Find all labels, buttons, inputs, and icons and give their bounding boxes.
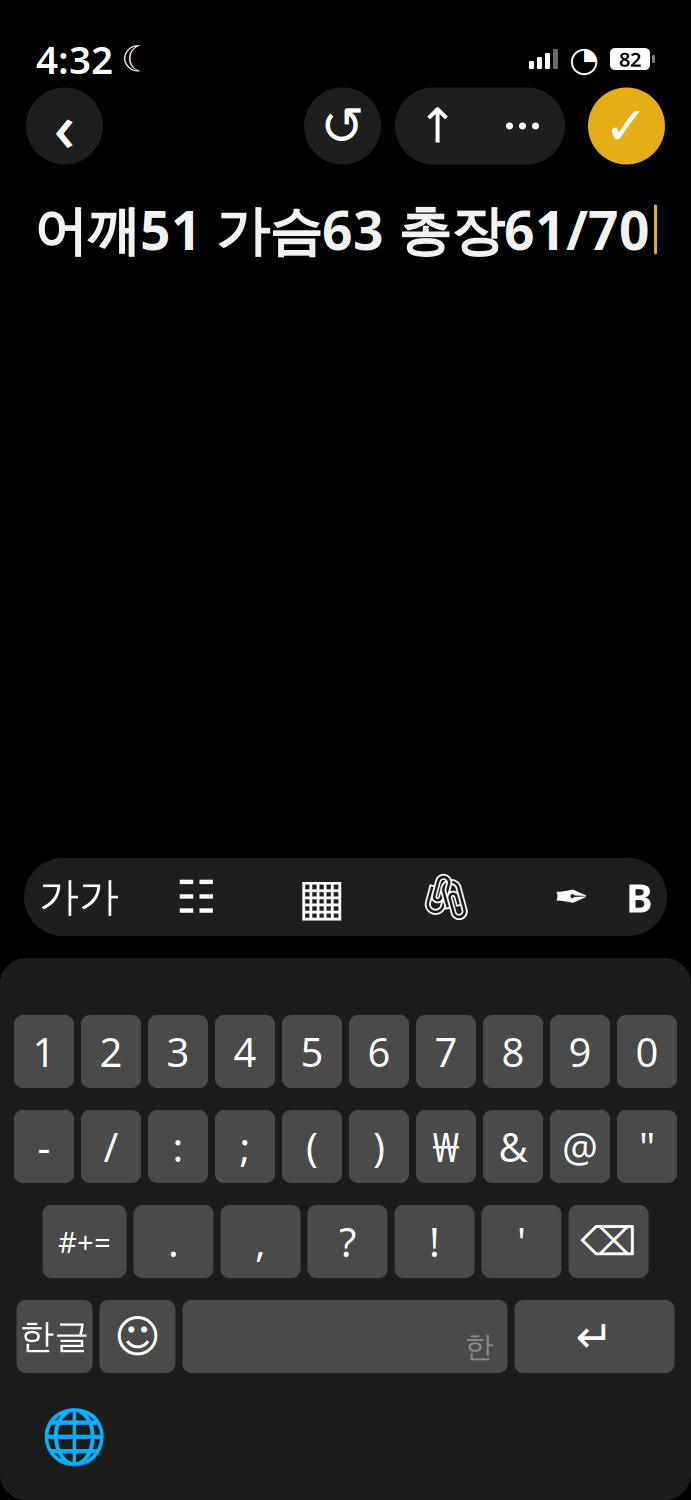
staticText: & [498,1120,527,1173]
button[interactable]: ₩ [416,1110,476,1183]
staticText: ↵ [575,1311,613,1362]
button[interactable]: 9 [550,1015,610,1088]
staticText: , [255,1215,266,1268]
button[interactable]: / [81,1110,141,1183]
staticText: ☷ [176,871,217,923]
button[interactable]: Text format [24,858,134,936]
staticText: 4 [233,1025,256,1078]
button[interactable]: More [480,87,565,164]
staticText: 9 [568,1025,591,1078]
staticText: 3 [166,1025,189,1078]
button[interactable]: 1 [14,1015,74,1088]
button[interactable]: Done [588,87,665,164]
button[interactable]: ) [349,1110,409,1183]
button[interactable]: ' [481,1205,561,1278]
staticText: 4:32 [36,33,113,85]
staticText: ☺ [114,1311,161,1362]
staticText: ( [306,1120,318,1173]
button[interactable]: Back [26,87,103,164]
staticText: ✒ [553,873,589,921]
staticText: . [168,1215,179,1268]
staticText: ◔ [569,39,599,79]
button[interactable]: & [483,1110,543,1183]
button[interactable]: 3 [148,1015,208,1088]
staticText: - [37,1120,50,1173]
staticText: 0 [635,1025,658,1078]
button[interactable]: Bold [634,858,667,936]
button[interactable]: 7 [416,1015,476,1088]
button[interactable]: , [220,1205,300,1278]
staticText: 한글 [19,1315,89,1358]
staticText: 7 [434,1025,457,1078]
button[interactable]: 4 [215,1015,275,1088]
staticText: 가가 [39,872,119,921]
button[interactable]: Checklist [134,858,259,936]
button[interactable]: 5 [282,1015,342,1088]
staticText: ↺ [320,96,365,156]
button[interactable]: Next keyboard [28,1395,120,1479]
staticText: B [626,870,653,923]
staticText: ↑ [417,99,457,153]
staticText: 🌐 [41,1406,107,1467]
staticText: ' [517,1215,526,1268]
button[interactable]: #+= [42,1205,126,1278]
staticText: 8 [501,1025,524,1078]
staticText: " [639,1120,655,1173]
button[interactable]: @ [550,1110,610,1183]
staticText: #+= [58,1222,111,1261]
staticText: ☾ [121,39,153,79]
button[interactable]: 한글 [16,1300,92,1373]
staticText: ▦ [297,868,345,926]
staticText: @ [562,1120,598,1173]
staticText: 어깨51 가슴63 총장61/70 [34,194,650,265]
staticText: ; [239,1120,250,1173]
button[interactable]: 6 [349,1015,409,1088]
button[interactable]: ↵ [514,1300,674,1373]
staticText: 한 [464,1329,493,1365]
button[interactable]: ( [282,1110,342,1183]
button[interactable]: Attach [384,858,509,936]
button[interactable]: - [14,1110,74,1183]
button[interactable]: " [617,1110,677,1183]
staticText: ) [373,1120,385,1173]
staticText: 6 [367,1025,390,1078]
button[interactable]: . [133,1205,213,1278]
staticText: ⌫ [580,1219,637,1264]
button[interactable]: Space [182,1300,507,1373]
staticText: : [172,1120,183,1173]
staticText: ✓ [604,96,649,156]
staticText: 5 [300,1025,323,1078]
staticText: ! [429,1215,440,1268]
button[interactable]: Table [259,858,384,936]
button[interactable]: Undo [304,87,381,164]
staticText: 🖇 [417,871,475,923]
button[interactable]: Share [395,87,480,164]
button[interactable]: ⌫ [568,1205,648,1278]
button[interactable]: : [148,1110,208,1183]
staticText: ? [339,1215,356,1268]
staticText: 1 [32,1025,55,1078]
button[interactable]: ; [215,1110,275,1183]
button[interactable]: 2 [81,1015,141,1088]
staticText: 2 [99,1025,122,1078]
button[interactable]: Markup [509,858,634,936]
staticText: ‹ [53,82,75,170]
staticText: 82 [619,46,641,72]
staticText: / [103,1120,118,1173]
button[interactable]: ? [307,1205,387,1278]
button[interactable]: 8 [483,1015,543,1088]
button[interactable]: 0 [617,1015,677,1088]
button[interactable]: ! [394,1205,474,1278]
staticText: ₩ [432,1120,459,1173]
button[interactable]: ☺ [99,1300,175,1373]
